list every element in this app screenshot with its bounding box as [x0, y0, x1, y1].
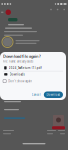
staticText: Cancel [32, 93, 41, 96]
staticText: Download file again? [3, 53, 41, 59]
button[interactable]: Don't show again [3, 79, 63, 83]
staticText: File name already exists [3, 60, 33, 63]
staticText: Download [46, 93, 60, 96]
button[interactable]: Download [44, 91, 63, 98]
button[interactable]: Downloads [3, 71, 63, 77]
staticText: Don't show again [8, 79, 32, 83]
button[interactable]: 2024_TaxReturn (1).pdf [3, 65, 63, 71]
staticText: 2024_TaxReturn (1).pdf [9, 66, 42, 70]
button[interactable]: Cancel [30, 92, 43, 97]
staticText: Downloads [10, 73, 25, 76]
